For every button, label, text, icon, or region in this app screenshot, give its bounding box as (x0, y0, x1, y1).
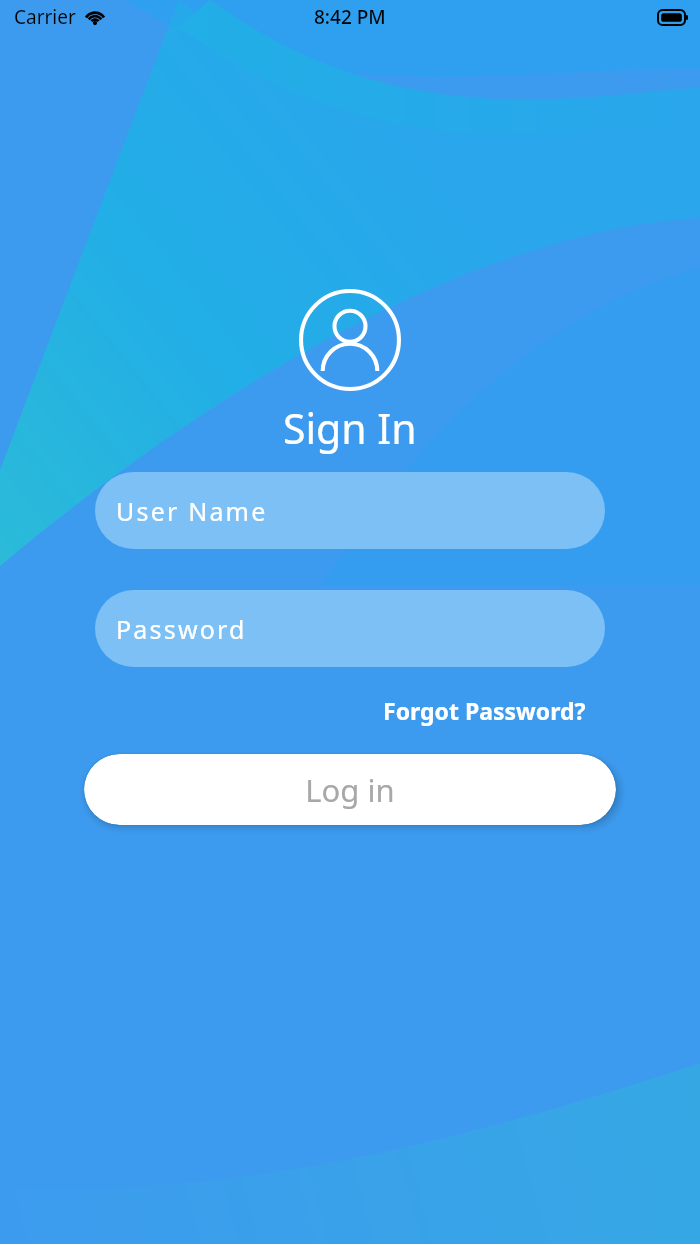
staticText: Carrier (14, 4, 76, 30)
button[interactable]: User Name (95, 472, 605, 549)
button[interactable]: Password (95, 590, 605, 667)
staticText: Forgot Password? (383, 695, 586, 726)
staticText: User Name (116, 494, 268, 528)
staticText: 8:42 PM (314, 4, 386, 30)
button[interactable]: Forgot Password? (379, 691, 590, 730)
other: Profile avatar (299, 289, 401, 391)
staticText: Sign In (283, 400, 417, 456)
button[interactable]: Log in (84, 754, 616, 825)
staticText: Log in (305, 769, 395, 811)
staticText: Password (116, 612, 247, 646)
